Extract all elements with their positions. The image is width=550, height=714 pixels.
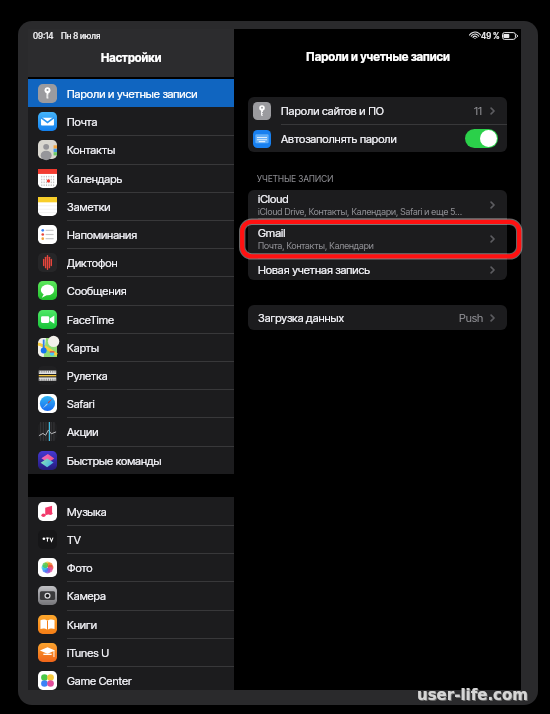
button[interactable]: Напоминания (28, 220, 234, 249)
staticText: Календарь (67, 172, 123, 186)
staticText: iCloud Drive, Контакты, Календари, Safar… (258, 206, 463, 217)
staticText: Карты (67, 341, 99, 355)
button[interactable]: Почта (28, 107, 234, 136)
button[interactable]: TV (28, 525, 234, 554)
button[interactable]: Быстрые команды (28, 446, 234, 475)
staticText: Game Center (67, 674, 132, 688)
staticText: Рулетка (67, 369, 108, 383)
staticText: Диктофон (67, 256, 118, 270)
button[interactable]: Календарь (28, 164, 234, 193)
staticText: Пароли и учетные записи (306, 50, 450, 64)
staticText: Safari (67, 397, 95, 411)
button[interactable]: Камера (28, 581, 234, 610)
button[interactable]: Game Center (28, 666, 234, 690)
button[interactable]: Пароли сайтов и ПО (248, 97, 507, 124)
button[interactable]: Gmail (248, 219, 507, 258)
staticText: Контакты (67, 143, 116, 157)
staticText: Фото (67, 561, 93, 575)
staticText: Настройки (101, 51, 162, 65)
button[interactable]: Музыка (28, 497, 234, 526)
staticText: iCloud (258, 192, 289, 206)
button[interactable]: Пароли и учетные записи (28, 79, 234, 108)
staticText: Пн 8 июля (61, 31, 101, 41)
button[interactable]: iCloud (248, 190, 507, 218)
button[interactable]: Диктофон (28, 248, 234, 277)
button[interactable]: Автозаполнять пароли (465, 129, 498, 148)
staticText: Почта, Контакты, Календари (258, 240, 374, 251)
button[interactable]: FaceTime (28, 305, 234, 334)
button[interactable]: Новая учетная запись (248, 259, 507, 280)
staticText: FaceTime (67, 313, 115, 327)
staticText: iTunes U (67, 646, 110, 660)
staticText: Загрузка данных (258, 311, 345, 325)
staticText: Пароли сайтов и ПО (281, 104, 384, 118)
button[interactable]: Акции (28, 417, 234, 446)
staticText: Быстрые команды (67, 454, 162, 468)
button[interactable]: iTunes U (28, 638, 234, 667)
staticText: Акции (67, 425, 99, 439)
staticText: user-life.com (418, 687, 529, 704)
button[interactable]: Фото (28, 553, 234, 582)
staticText: TV (67, 533, 81, 547)
staticText: Автозаполнять пароли (281, 132, 397, 146)
staticText: 09:14 (33, 31, 54, 41)
staticText: user-life.com (417, 686, 528, 703)
staticText: Push (459, 311, 484, 325)
staticText: Пароли и учетные записи (67, 87, 198, 101)
staticText: Новая учетная запись (258, 263, 371, 277)
staticText: Музыка (67, 505, 107, 519)
staticText: Сообщения (67, 284, 127, 298)
staticText: 11 (474, 104, 483, 118)
button[interactable]: Книги (28, 610, 234, 639)
staticText: Почта (67, 115, 98, 129)
staticText: Gmail (258, 226, 286, 240)
staticText: Камера (67, 589, 106, 603)
staticText: Напоминания (67, 228, 138, 242)
button[interactable]: Автозаполнять пароли (248, 125, 507, 152)
button[interactable]: Загрузка данных (248, 305, 507, 330)
button[interactable]: Safari (28, 389, 234, 418)
button[interactable]: Контакты (28, 135, 234, 164)
button[interactable]: Сообщения (28, 276, 234, 305)
staticText: Книги (67, 618, 97, 632)
button[interactable]: Заметки (28, 192, 234, 221)
staticText: УЧЕТНЫЕ ЗАПИСИ (257, 174, 334, 184)
staticText: 49 % (481, 31, 500, 41)
button[interactable]: Карты (28, 333, 234, 362)
staticText: Заметки (67, 200, 111, 214)
button[interactable]: Рулетка (28, 361, 234, 390)
